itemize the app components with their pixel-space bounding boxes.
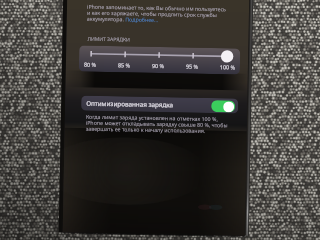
button[interactable]: Лимит зарядки bbox=[79, 45, 240, 75]
staticText: iPhone запоминает то, как Вы обычно им п… bbox=[87, 3, 229, 25]
button[interactable]: Оптимизированная зарядка bbox=[81, 96, 238, 114]
staticText: Оптимизированная зарядка bbox=[86, 99, 173, 109]
staticText: 85 % bbox=[118, 61, 131, 68]
staticText: ЛИМИТ ЗАРЯДКИ bbox=[87, 36, 130, 43]
staticText: 80 % bbox=[84, 61, 97, 68]
staticText: 100 % bbox=[220, 63, 236, 70]
staticText: 95 % bbox=[186, 63, 199, 70]
button[interactable]: Оптимизированная зарядка bbox=[211, 100, 235, 113]
staticText: Когда лимит заряда установлен на отметка… bbox=[86, 113, 232, 135]
staticText: 90 % bbox=[152, 62, 165, 69]
